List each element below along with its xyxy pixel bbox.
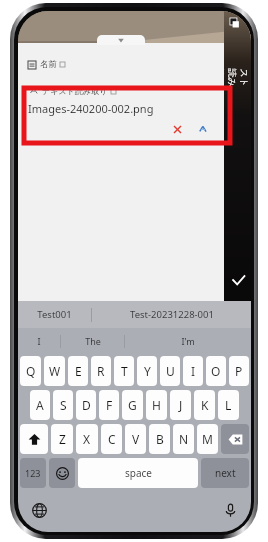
staticText: 123 [25, 467, 41, 479]
button[interactable]: F [99, 390, 119, 420]
button[interactable]: U [160, 356, 180, 386]
button[interactable]: Z [51, 424, 73, 454]
button[interactable]: Collapse sheet [97, 35, 145, 45]
button[interactable]: G [122, 390, 143, 420]
button[interactable]: Confirm [229, 271, 247, 289]
button[interactable]: X [76, 424, 98, 454]
staticText: S [60, 397, 67, 413]
staticText: The [85, 335, 101, 347]
button[interactable]: space [78, 458, 198, 488]
staticText: Images-240200-002.png [28, 101, 154, 116]
button[interactable]: I [18, 328, 60, 354]
button[interactable]: B [149, 424, 170, 454]
staticText: W [49, 363, 61, 379]
button[interactable]: V [125, 424, 146, 454]
button[interactable]: Y [137, 356, 157, 386]
staticText: X [83, 431, 91, 447]
button[interactable]: P [229, 356, 249, 386]
staticText: B [156, 431, 164, 447]
button[interactable]: Read text [196, 122, 210, 136]
button[interactable]: S [53, 390, 73, 420]
button[interactable]: J [170, 390, 191, 420]
staticText: テキスト読み取り [213, 68, 251, 95]
staticText: L [225, 397, 232, 413]
staticText: Z [59, 431, 66, 447]
button[interactable]: Numbers [20, 458, 46, 488]
button[interactable]: C [101, 424, 122, 454]
staticText: E [75, 363, 82, 379]
button[interactable]: W [44, 356, 65, 386]
button[interactable]: M [197, 424, 218, 454]
button[interactable]: テキスト読み取り [18, 86, 224, 136]
staticText: I [191, 363, 196, 379]
staticText: Q [26, 363, 36, 379]
button[interactable]: next [201, 458, 249, 488]
button[interactable]: T [114, 356, 134, 386]
button[interactable]: L [218, 390, 239, 420]
staticText: テキスト読み取り [42, 86, 108, 96]
button[interactable]: I [183, 356, 203, 386]
button[interactable]: A [30, 390, 50, 420]
button[interactable]: Dictate [219, 499, 241, 521]
staticText: C [108, 431, 116, 447]
button[interactable]: H [146, 390, 167, 420]
button[interactable]: Shift [20, 424, 48, 454]
button[interactable]: The [61, 328, 124, 354]
button[interactable]: E [68, 356, 88, 386]
button[interactable]: 名前 [18, 57, 224, 72]
button[interactable]: Test001 [18, 301, 91, 328]
button[interactable]: N [173, 424, 194, 454]
staticText: I'm [181, 335, 195, 347]
button[interactable]: Change keyboard [28, 499, 50, 521]
staticText: 名前 [40, 59, 57, 70]
button[interactable]: Backspace [221, 424, 249, 454]
staticText: J [179, 397, 183, 413]
button[interactable]: Switch camera mode [227, 17, 241, 31]
staticText: K [201, 397, 209, 413]
button[interactable]: O [206, 356, 226, 386]
staticText: P [235, 363, 243, 379]
button[interactable]: R [91, 356, 111, 386]
staticText: N [179, 431, 189, 447]
button[interactable]: I'm [125, 328, 251, 354]
staticText: A [36, 397, 44, 413]
staticText: U [166, 363, 175, 379]
staticText: V [132, 431, 140, 447]
staticText: F [106, 397, 113, 413]
staticText: next [215, 466, 236, 480]
staticText: H [152, 397, 161, 413]
button[interactable]: D [76, 390, 96, 420]
staticText: I [37, 335, 41, 347]
staticText: Test-20231228-001 [130, 308, 214, 321]
staticText: G [128, 397, 137, 413]
button[interactable]: K [194, 390, 215, 420]
staticText: D [82, 397, 91, 413]
button[interactable]: Emoji [49, 458, 75, 488]
staticText: space [125, 466, 152, 480]
staticText: Y [144, 363, 151, 379]
staticText: O [211, 363, 221, 379]
staticText: R [97, 363, 105, 379]
staticText: M [202, 431, 213, 447]
button[interactable]: Test-20231228-001 [92, 301, 251, 328]
staticText: T [121, 363, 128, 379]
button[interactable]: Q [20, 356, 41, 386]
button[interactable]: Clear [170, 122, 184, 136]
staticText: Test001 [37, 308, 72, 321]
